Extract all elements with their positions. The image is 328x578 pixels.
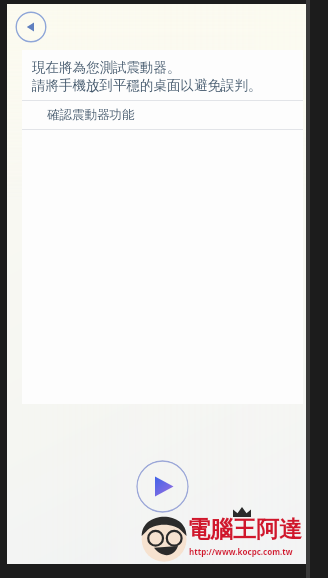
button[interactable]: 播放 <box>136 460 189 513</box>
staticText: 現在將為您測試震動器。 <box>32 59 181 76</box>
staticText: http://www.kocpc.com.tw <box>189 546 293 557</box>
button[interactable]: 確認震動器功能 <box>22 101 303 129</box>
staticText: 請將手機放到平穩的桌面以避免誤判。 <box>32 77 262 94</box>
staticText: 電腦王阿達 <box>187 515 302 543</box>
button[interactable]: 返回 <box>15 11 47 43</box>
staticText: 確認震動器功能 <box>47 107 135 123</box>
